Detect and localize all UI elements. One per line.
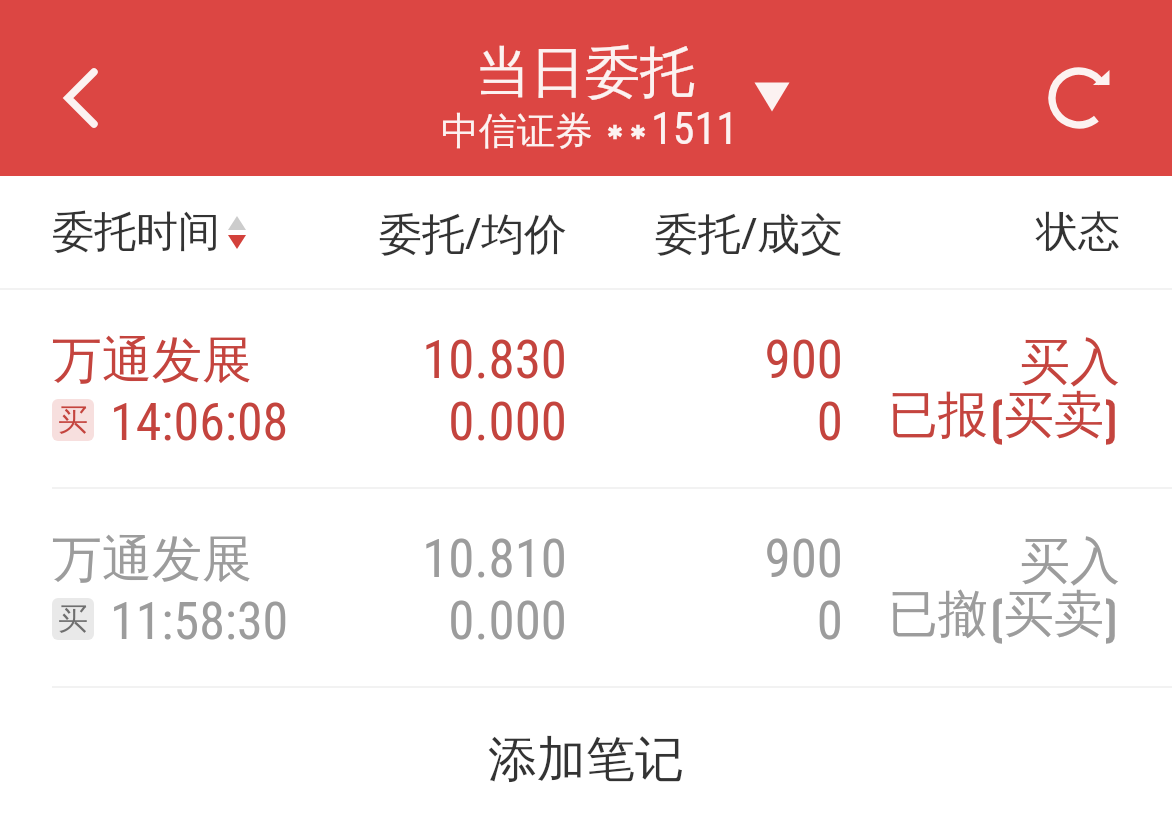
staticText: 900	[0, 528, 843, 590]
staticText: 14:06:08	[110, 392, 289, 453]
staticText: 已报	[888, 384, 988, 447]
staticText: 买入	[0, 530, 1120, 593]
staticText: 买	[58, 401, 88, 439]
staticText: 1511	[651, 103, 738, 155]
staticText: 委托时间	[52, 206, 220, 259]
button[interactable]: 万通发展	[0, 290, 1172, 487]
staticText: 10.810	[0, 528, 567, 590]
button[interactable]: 委托时间	[52, 206, 246, 259]
button[interactable]: Back	[21, 38, 141, 158]
staticText: 委托/均价	[0, 203, 567, 262]
staticText: 添加笔记	[488, 729, 684, 791]
staticText: 0.000	[0, 590, 567, 652]
staticText: 当日委托	[475, 38, 695, 107]
staticText: 买卖	[1004, 384, 1104, 447]
staticText: 10.830	[0, 329, 567, 391]
staticText: 万通发展	[52, 528, 252, 591]
staticText: 万通发展	[52, 329, 252, 392]
staticText: 状态	[0, 206, 1120, 259]
staticText: 买	[58, 600, 88, 638]
staticText: 0	[0, 391, 843, 453]
staticText: 0	[0, 590, 843, 652]
staticText: 中信证券	[441, 107, 593, 155]
staticText: 11:58:30	[110, 591, 289, 652]
button[interactable]: 万通发展	[0, 489, 1172, 686]
button[interactable]: 添加笔记	[0, 688, 1172, 815]
staticText: 已撤	[888, 583, 988, 646]
staticText: 买卖	[1004, 583, 1104, 646]
staticText: 0.000	[0, 391, 567, 453]
staticText: 委托/成交	[0, 203, 843, 262]
button[interactable]: Refresh	[1019, 38, 1139, 158]
button[interactable]: Switch account	[734, 59, 810, 135]
staticText: 买入	[0, 331, 1120, 394]
staticText: 900	[0, 329, 843, 391]
